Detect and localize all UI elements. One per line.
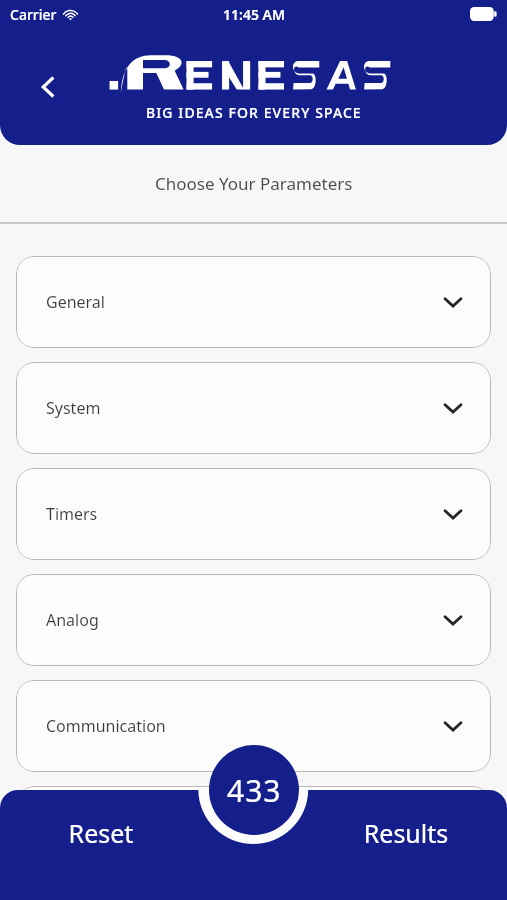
staticText: Carrier [10,5,57,24]
staticText: Memory [46,821,109,843]
button[interactable]: General [16,256,491,348]
staticText: 433 [227,770,282,811]
button[interactable]: Timers [16,468,491,560]
button[interactable]: Communication [16,680,491,772]
staticText: System [46,397,101,419]
button[interactable]: Analog [16,574,491,666]
staticText: Analog [46,609,99,631]
staticText: 11:45 AM [223,5,285,24]
staticText: Choose Your Parameters [155,172,353,195]
button[interactable]: System [16,362,491,454]
button[interactable]: Results [321,806,491,860]
button[interactable]: Memory [16,786,491,878]
staticText: Timers [46,503,98,525]
button[interactable]: 433 [209,745,299,835]
button[interactable]: Reset [16,806,186,860]
staticText: BIG IDEAS FOR EVERY SPACE [146,103,362,122]
staticText: Communication [46,715,166,737]
button[interactable]: Back [24,63,72,111]
staticText: General [46,291,105,313]
